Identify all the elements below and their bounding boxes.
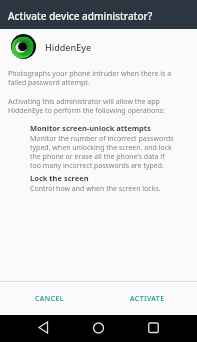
button[interactable] [126,315,181,342]
button[interactable] [71,315,126,342]
staticText: ACTIVATE [130,294,165,304]
staticText: Monitor the number of incorrect password… [30,134,174,170]
staticText: Monitor screen-unlock attempts [30,123,151,133]
button[interactable] [16,315,71,342]
staticText: Activate device administrator? [8,9,153,23]
staticText: Activating this administrator will allow… [8,97,165,115]
staticText: CANCEL [35,294,64,304]
button[interactable]: ACTIVATE [98,282,197,315]
staticText: Control how and when the screen locks. [30,184,161,194]
staticText: Photographs your phone intruder when the… [8,69,172,87]
button[interactable]: CANCEL [0,282,98,315]
staticText: Lock the screen [30,173,89,183]
staticText: HiddenEye [45,41,92,53]
